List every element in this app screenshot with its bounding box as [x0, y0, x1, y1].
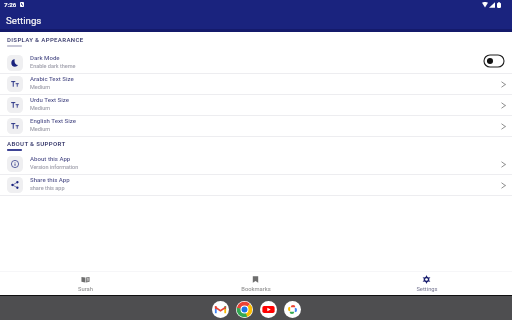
- other: Open Arabic Text Size: [499, 80, 508, 89]
- staticText: 7:26: [4, 1, 17, 8]
- staticText: Enable dark theme: [30, 63, 76, 69]
- staticText: ABOUT & SUPPORT: [7, 140, 66, 147]
- staticText: Medium: [30, 126, 51, 132]
- staticText: Settings: [6, 15, 42, 26]
- button[interactable]: Gmail: [212, 301, 229, 318]
- button[interactable]: Arabic Text Size: [0, 74, 512, 94]
- button[interactable]: Dark mode toggle: [484, 55, 504, 67]
- button[interactable]: Bookmarks: [170, 271, 341, 296]
- other: Open English Text Size: [499, 122, 508, 131]
- other: Open Share this App: [499, 181, 508, 190]
- staticText: Bookmarks: [241, 286, 271, 293]
- staticText: Settings: [416, 286, 438, 293]
- staticText: Arabic Text Size: [30, 75, 74, 82]
- button[interactable]: Settings: [341, 271, 512, 296]
- staticText: Medium: [30, 105, 51, 111]
- button[interactable]: Dark Mode: [0, 53, 512, 73]
- button[interactable]: Chrome: [236, 301, 253, 318]
- button[interactable]: Photos: [284, 301, 301, 318]
- button[interactable]: YouTube: [260, 301, 277, 318]
- button[interactable]: Urdu Text Size: [0, 95, 512, 115]
- staticText: Medium: [30, 84, 51, 90]
- other: Open Urdu Text Size: [499, 101, 508, 110]
- staticText: Share this App: [30, 176, 70, 183]
- staticText: Urdu Text Size: [30, 96, 70, 103]
- staticText: Surah: [78, 286, 93, 293]
- button[interactable]: About this App: [0, 154, 512, 174]
- staticText: DISPLAY & APPEARANCE: [7, 36, 84, 43]
- staticText: Dark Mode: [30, 54, 60, 61]
- staticText: About this App: [30, 155, 71, 162]
- button[interactable]: English Text Size: [0, 116, 512, 136]
- staticText: share this app: [30, 185, 65, 191]
- other: Open About this App: [499, 160, 508, 169]
- button[interactable]: Surah: [0, 271, 170, 296]
- staticText: Version information: [30, 164, 79, 170]
- staticText: English Text Size: [30, 117, 77, 124]
- button[interactable]: Share this App: [0, 175, 512, 195]
